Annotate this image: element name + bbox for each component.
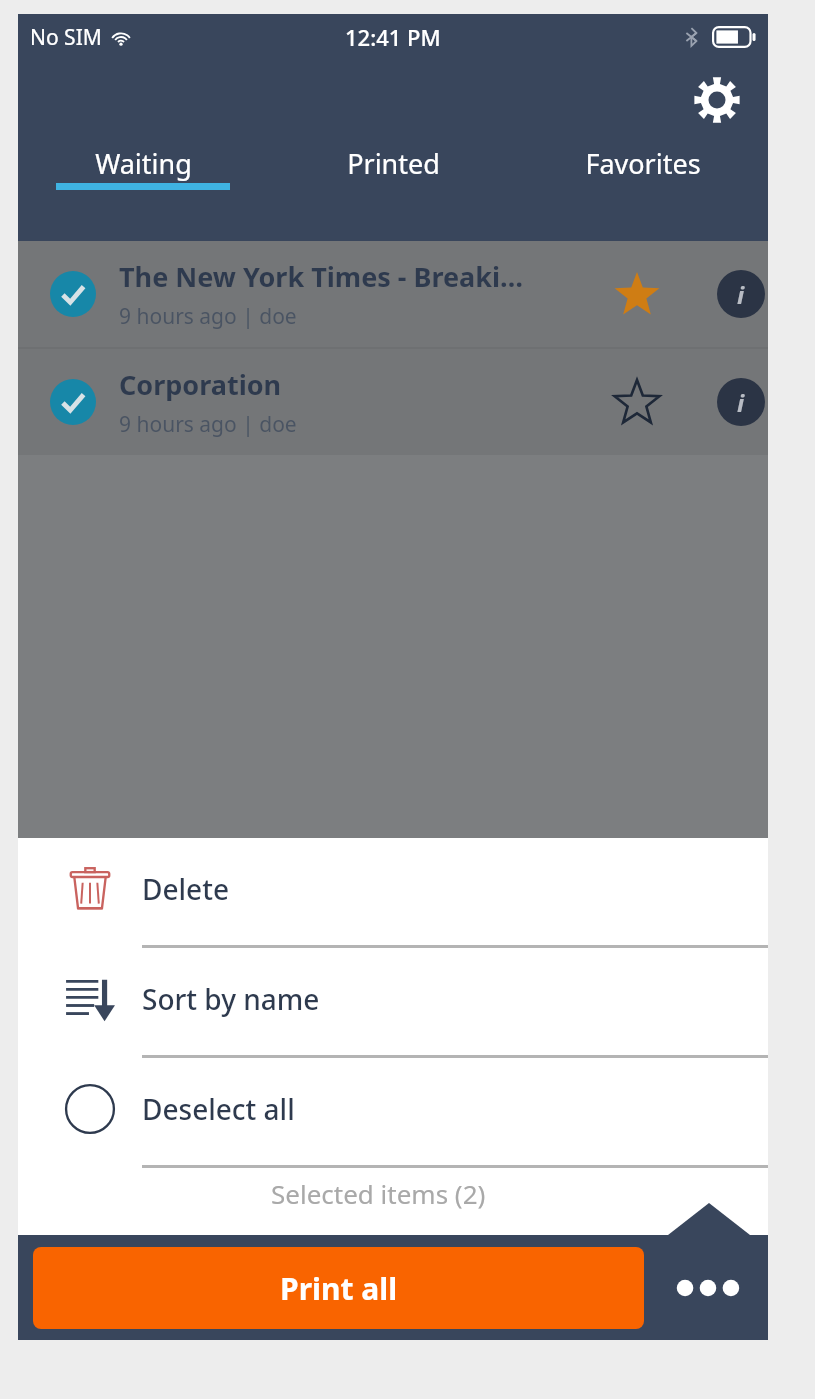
button[interactable]: Add favorite xyxy=(609,374,665,430)
button[interactable]: Selected xyxy=(18,349,768,455)
staticText: Printed xyxy=(347,145,440,182)
button[interactable]: Print all xyxy=(33,1247,644,1329)
staticText: Corporation xyxy=(119,366,282,403)
staticText: The New York Times - Breaki… xyxy=(119,258,524,295)
staticText: Delete xyxy=(142,870,229,908)
staticText: 9 hours ago | doe xyxy=(119,410,297,439)
button[interactable]: Favorites xyxy=(518,153,768,190)
button[interactable]: Printed xyxy=(268,153,518,190)
staticText: No SIM xyxy=(30,23,102,52)
staticText: Sort by name xyxy=(142,980,320,1018)
button[interactable]: Delete xyxy=(18,838,768,948)
staticText: i xyxy=(737,386,745,419)
button[interactable]: Waiting xyxy=(18,153,268,190)
staticText: Selected items (2) xyxy=(271,1176,486,1211)
staticText: Favorites xyxy=(585,145,701,182)
staticText: 12:41 PM xyxy=(345,22,441,52)
button[interactable]: Deselect all xyxy=(18,1058,768,1168)
staticText: Deselect all xyxy=(142,1090,295,1128)
button[interactable]: More options xyxy=(665,1245,751,1331)
button[interactable]: Selected xyxy=(18,241,768,347)
button[interactable]: Info xyxy=(713,374,769,430)
staticText: 9 hours ago | doe xyxy=(119,302,297,331)
button[interactable]: Selected xyxy=(50,379,96,425)
staticText: Print all xyxy=(280,1268,398,1309)
button[interactable]: Settings xyxy=(688,71,746,129)
button[interactable]: Selected xyxy=(50,271,96,317)
staticText: Waiting xyxy=(95,145,192,182)
button[interactable]: Info xyxy=(713,266,769,322)
button[interactable]: Sort by name xyxy=(18,948,768,1058)
staticText: i xyxy=(737,278,745,311)
button[interactable]: Remove favorite xyxy=(609,266,665,322)
